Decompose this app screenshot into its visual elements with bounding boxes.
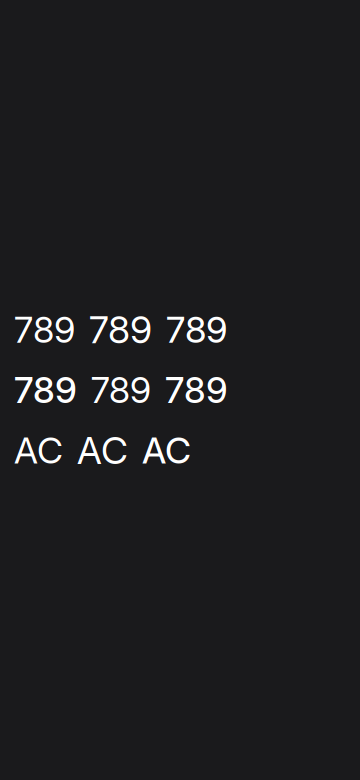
staticText: 789 [14,368,77,412]
staticText: AC [14,429,63,472]
staticText: AC [142,429,191,472]
staticText: 789 [165,368,228,412]
staticText: 789 [166,308,227,351]
staticText: 789 [14,308,75,351]
staticText: AC [77,428,128,473]
staticText: 789 [91,368,151,412]
staticText: 789 [89,307,152,352]
